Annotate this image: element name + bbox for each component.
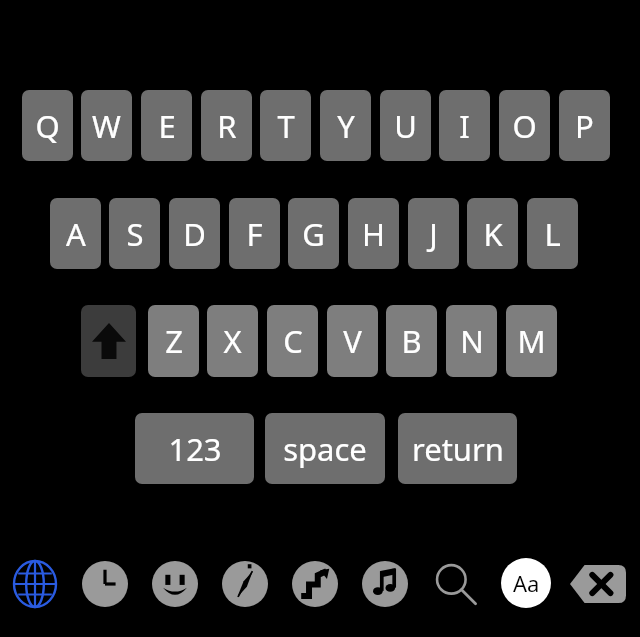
button[interactable]: O — [499, 90, 550, 161]
button[interactable]: space — [265, 413, 385, 484]
button[interactable]: 123 — [135, 413, 254, 484]
button[interactable]: J — [408, 198, 459, 269]
staticText: L — [544, 213, 561, 255]
staticText: Q — [35, 105, 60, 147]
staticText: D — [183, 213, 206, 255]
button[interactable]: return — [398, 413, 517, 484]
staticText: 123 — [168, 428, 222, 470]
button[interactable]: V — [327, 305, 378, 377]
staticText: Aa — [513, 568, 540, 598]
staticText: C — [283, 320, 303, 362]
staticText: W — [92, 105, 121, 147]
button[interactable]: M — [506, 305, 557, 377]
button[interactable]: K — [467, 198, 518, 269]
button[interactable]: X — [207, 305, 258, 377]
button[interactable]: R — [201, 90, 252, 161]
button[interactable]: L — [527, 198, 578, 269]
button[interactable]: Delete — [568, 560, 628, 608]
button[interactable]: N — [446, 305, 497, 377]
button[interactable]: Search — [431, 560, 479, 608]
staticText: space — [283, 428, 367, 470]
button[interactable]: Aa — [501, 558, 551, 608]
staticText: return — [412, 428, 504, 470]
button[interactable]: W — [81, 90, 132, 161]
button[interactable]: E — [141, 90, 192, 161]
staticText: F — [246, 213, 263, 255]
staticText: R — [217, 105, 237, 147]
button[interactable]: C — [267, 305, 318, 377]
button[interactable]: I — [439, 90, 490, 161]
button[interactable]: S — [109, 198, 160, 269]
button[interactable]: D — [169, 198, 220, 269]
staticText: H — [362, 213, 385, 255]
button[interactable]: Globe — [8, 557, 62, 611]
button[interactable]: F — [229, 198, 280, 269]
button[interactable]: Music — [361, 560, 409, 608]
button[interactable]: Y — [320, 90, 371, 161]
button[interactable]: Q — [22, 90, 73, 161]
staticText: X — [223, 320, 242, 362]
button[interactable]: P — [559, 90, 610, 161]
button[interactable]: H — [348, 198, 399, 269]
button[interactable]: Z — [148, 305, 199, 377]
staticText: I — [459, 105, 470, 147]
button[interactable]: Clock — [81, 560, 129, 608]
staticText: A — [66, 213, 86, 255]
staticText: U — [394, 105, 417, 147]
staticText: B — [401, 320, 422, 362]
button[interactable]: Shift — [81, 305, 136, 377]
staticText: N — [460, 320, 484, 362]
button[interactable]: G — [288, 198, 339, 269]
button[interactable]: Browser — [221, 560, 269, 608]
button[interactable]: Emoji — [151, 560, 199, 608]
staticText: M — [517, 320, 546, 362]
staticText: K — [483, 213, 503, 255]
button[interactable]: U — [380, 90, 431, 161]
staticText: P — [575, 105, 594, 147]
staticText: O — [512, 105, 537, 147]
button[interactable]: A — [50, 198, 101, 269]
staticText: J — [429, 213, 438, 255]
staticText: T — [277, 105, 295, 147]
button[interactable]: B — [386, 305, 437, 377]
staticText: V — [343, 320, 362, 362]
button[interactable]: T — [260, 90, 311, 161]
staticText: G — [302, 213, 325, 255]
staticText: S — [126, 213, 144, 255]
button[interactable]: Stocks — [291, 560, 339, 608]
staticText: Y — [337, 105, 355, 147]
staticText: E — [158, 105, 176, 147]
staticText: Z — [165, 320, 183, 362]
